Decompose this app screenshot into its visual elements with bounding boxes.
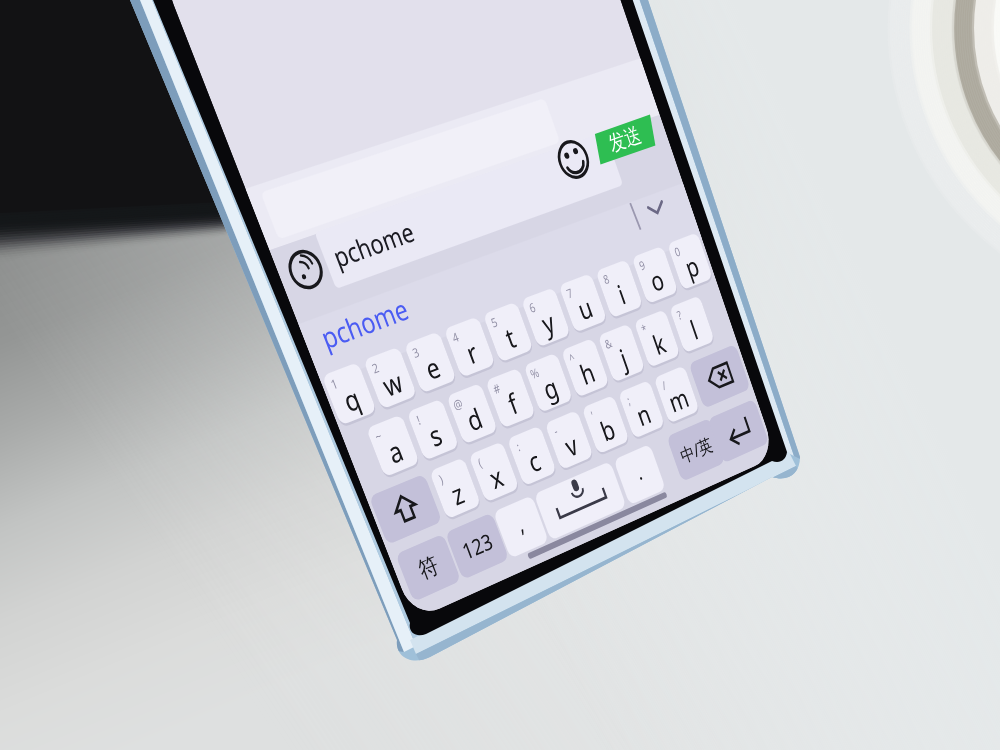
button[interactable]	[0, 0, 1000, 750]
